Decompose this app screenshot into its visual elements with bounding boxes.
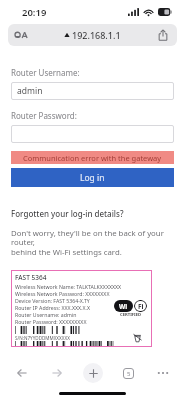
staticText: 5 xyxy=(127,370,131,378)
button[interactable]: Page settings xyxy=(8,24,177,46)
button[interactable]: New tab xyxy=(83,363,103,383)
staticText: Router Password: XXXXXXXXX xyxy=(15,318,87,325)
other: Share xyxy=(157,29,169,41)
staticText: Communication error with the gateway xyxy=(23,153,162,163)
staticText: FAST 5364 xyxy=(15,273,47,282)
staticText: admin xyxy=(17,85,43,97)
staticText: Fi xyxy=(138,302,144,311)
staticText: Wireless Network Password: XXXXXXXX xyxy=(15,290,110,297)
staticText: Don't worry, they'll be on the back of y… xyxy=(11,228,174,247)
button[interactable]: Back xyxy=(12,363,32,383)
button[interactable]: Tabs xyxy=(118,363,138,383)
button[interactable]: Forward xyxy=(47,363,67,383)
staticText: CERTIFIED xyxy=(120,312,142,318)
staticText: Wi xyxy=(119,302,128,311)
staticText: Router Username: xyxy=(11,67,80,78)
button[interactable]: admin xyxy=(11,82,174,100)
other: Page settings xyxy=(15,29,28,42)
staticText: Device Version: FAST 5364-X.TY xyxy=(15,297,90,304)
staticText: Router Password: xyxy=(11,110,77,121)
button[interactable] xyxy=(11,125,174,143)
staticText: Router Username: admin xyxy=(15,311,77,318)
staticText: behind the Wi-Fi settings card. xyxy=(11,247,122,258)
staticText: Log in xyxy=(80,172,105,184)
staticText: Router IP Address: XXX.XXX.X.X xyxy=(15,304,90,311)
staticText: Forgotten your log-in details? xyxy=(11,208,124,219)
staticText: 20:19 xyxy=(22,6,47,19)
staticText: 192.168.1.1 xyxy=(72,29,121,41)
button[interactable]: Log in xyxy=(11,168,174,187)
staticText: S/N:N7YYDDDMMXXXXXX xyxy=(15,335,70,341)
button[interactable]: More xyxy=(153,363,173,383)
staticText: Wireless Network Name: TALKTALKXXXXXXX xyxy=(15,283,122,290)
